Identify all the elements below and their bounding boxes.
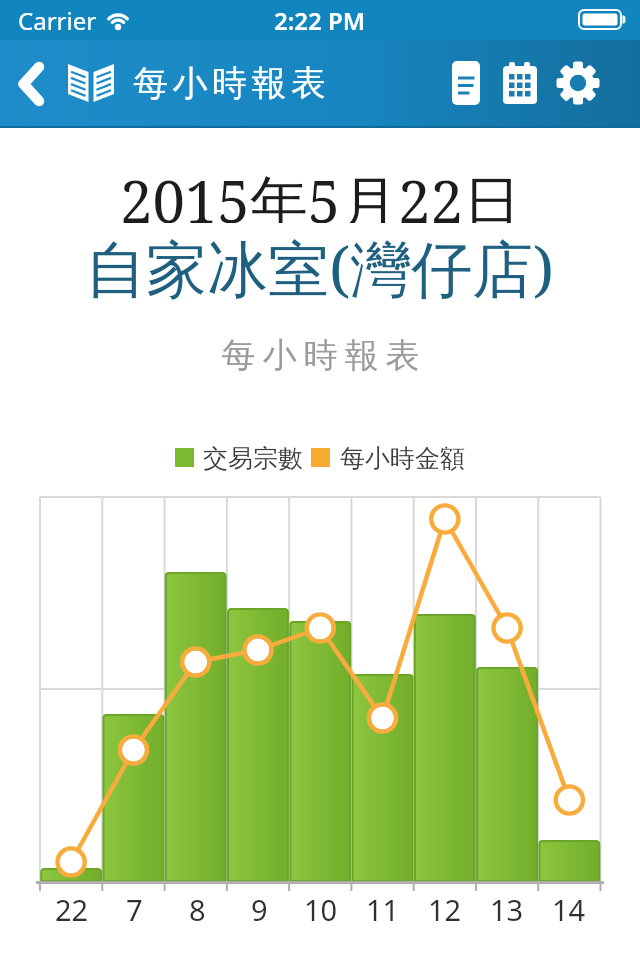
button[interactable] [548,40,608,126]
staticText: 22 [55,890,89,924]
staticText: 2015年5月22日 [120,161,521,223]
staticText: Carrier [18,4,97,37]
button[interactable] [56,40,116,126]
button[interactable] [440,40,492,126]
staticText: 13 [490,890,524,924]
staticText: 10 [304,890,338,924]
staticText: 2:22 PM [274,4,366,37]
staticText: 每小時金額 [340,443,465,471]
staticText: 每小時報表 [218,334,423,374]
staticText: 8 [189,890,206,924]
staticText: 12 [428,890,462,924]
staticText: 交易宗數 [203,443,303,471]
staticText: 14 [552,890,586,924]
button[interactable] [0,40,56,126]
staticText: 9 [251,890,268,924]
staticText: 11 [366,890,400,924]
staticText: 自家冰室(灣仔店) [85,226,555,302]
staticText: 7 [126,890,143,924]
staticText: 每小時報表 [131,61,328,105]
button[interactable] [492,40,548,126]
